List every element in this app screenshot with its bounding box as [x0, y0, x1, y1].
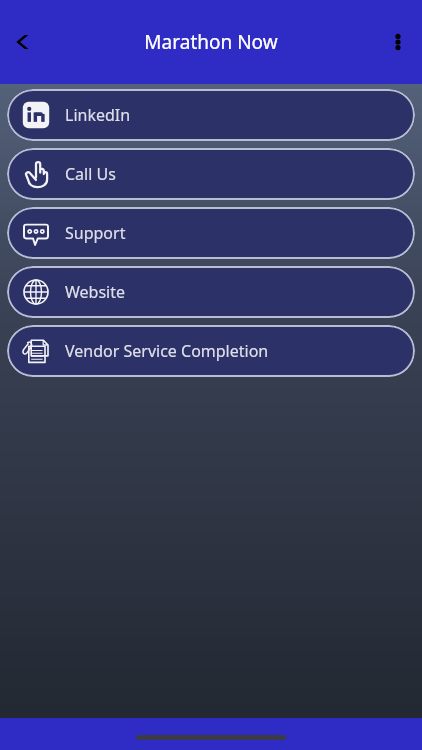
button[interactable]: Vendor Service Completion	[7, 325, 415, 377]
button[interactable]: More options	[376, 20, 420, 64]
staticText: Website	[65, 281, 126, 303]
button[interactable]: Back	[2, 20, 46, 64]
button[interactable]: Support	[7, 207, 415, 259]
staticText: Call Us	[65, 163, 116, 185]
button[interactable]: Website	[7, 266, 415, 318]
staticText: LinkedIn	[65, 104, 131, 126]
staticText: Vendor Service Completion	[65, 340, 269, 362]
button[interactable]: Call Us	[7, 148, 415, 200]
button[interactable]: LinkedIn	[7, 89, 415, 141]
staticText: Support	[65, 222, 126, 244]
staticText: Marathon Now	[144, 29, 278, 55]
